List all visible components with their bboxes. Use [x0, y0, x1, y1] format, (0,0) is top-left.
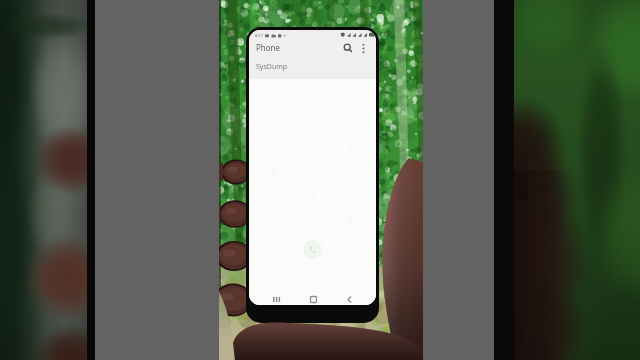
button[interactable]: More options	[356, 41, 370, 55]
button[interactable]: Call	[303, 240, 322, 259]
staticText: SysDump	[256, 62, 288, 72]
button[interactable]: Back	[339, 293, 359, 305]
staticText: Phone	[256, 42, 281, 53]
staticText: 8:37	[255, 33, 263, 38]
button[interactable]: Search	[340, 40, 356, 55]
button[interactable]: Recents	[266, 293, 286, 305]
button[interactable]: Home	[303, 293, 323, 305]
